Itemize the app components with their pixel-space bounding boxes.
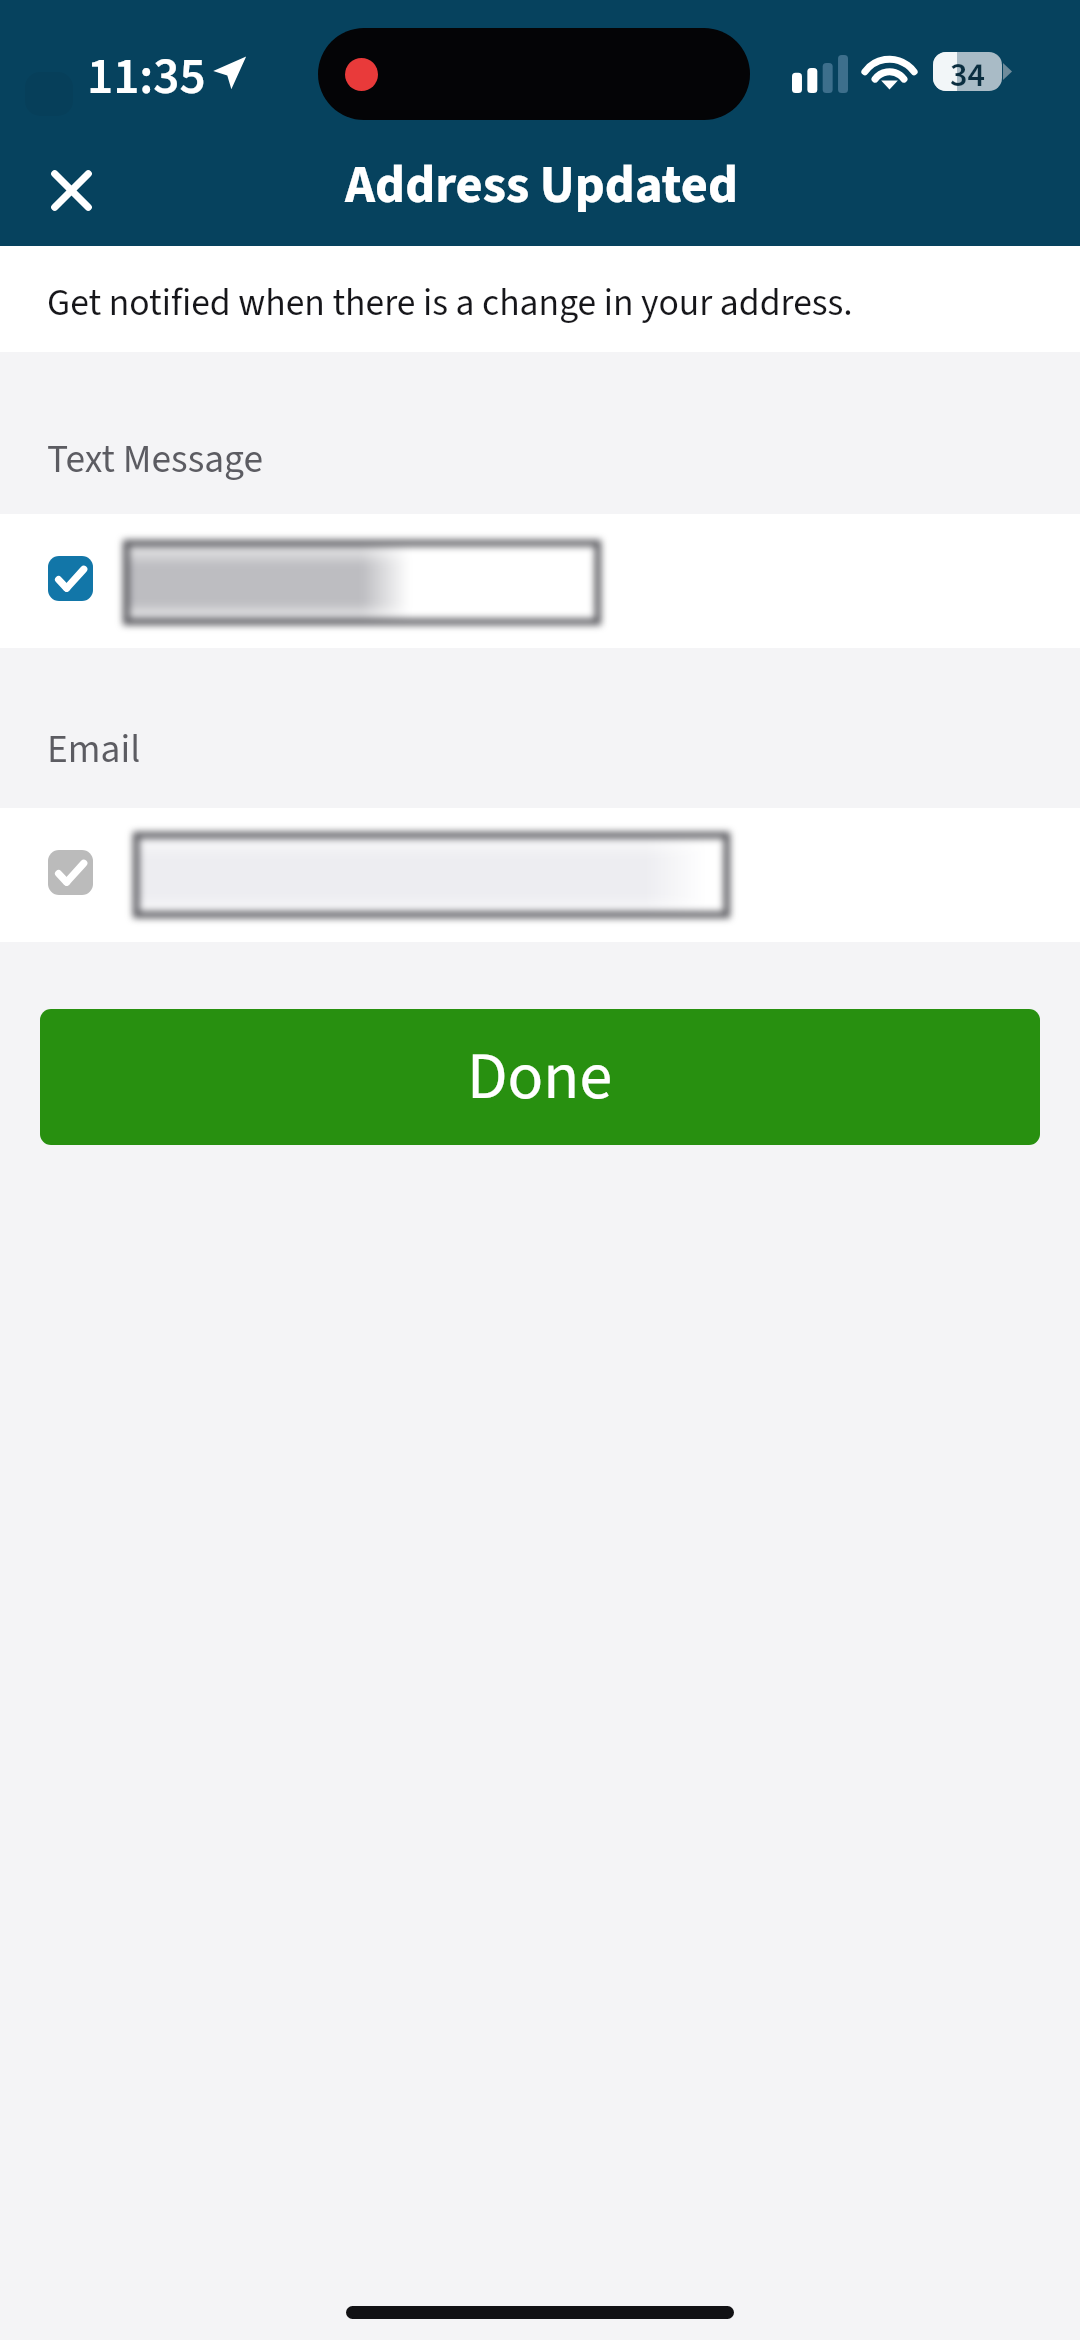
staticText: Text Message — [47, 432, 264, 488]
staticText: 34 — [950, 52, 985, 90]
staticText: Address Updated — [345, 148, 739, 223]
staticText: Done — [467, 1030, 613, 1124]
button[interactable] — [0, 514, 1080, 648]
button[interactable]: Close — [18, 137, 122, 241]
staticText: Get notified when there is a change in y… — [47, 276, 853, 330]
staticText: 11:35 — [87, 41, 206, 114]
button[interactable]: Done — [40, 1009, 1040, 1145]
staticText: Email — [47, 722, 141, 778]
button[interactable] — [0, 808, 1080, 942]
